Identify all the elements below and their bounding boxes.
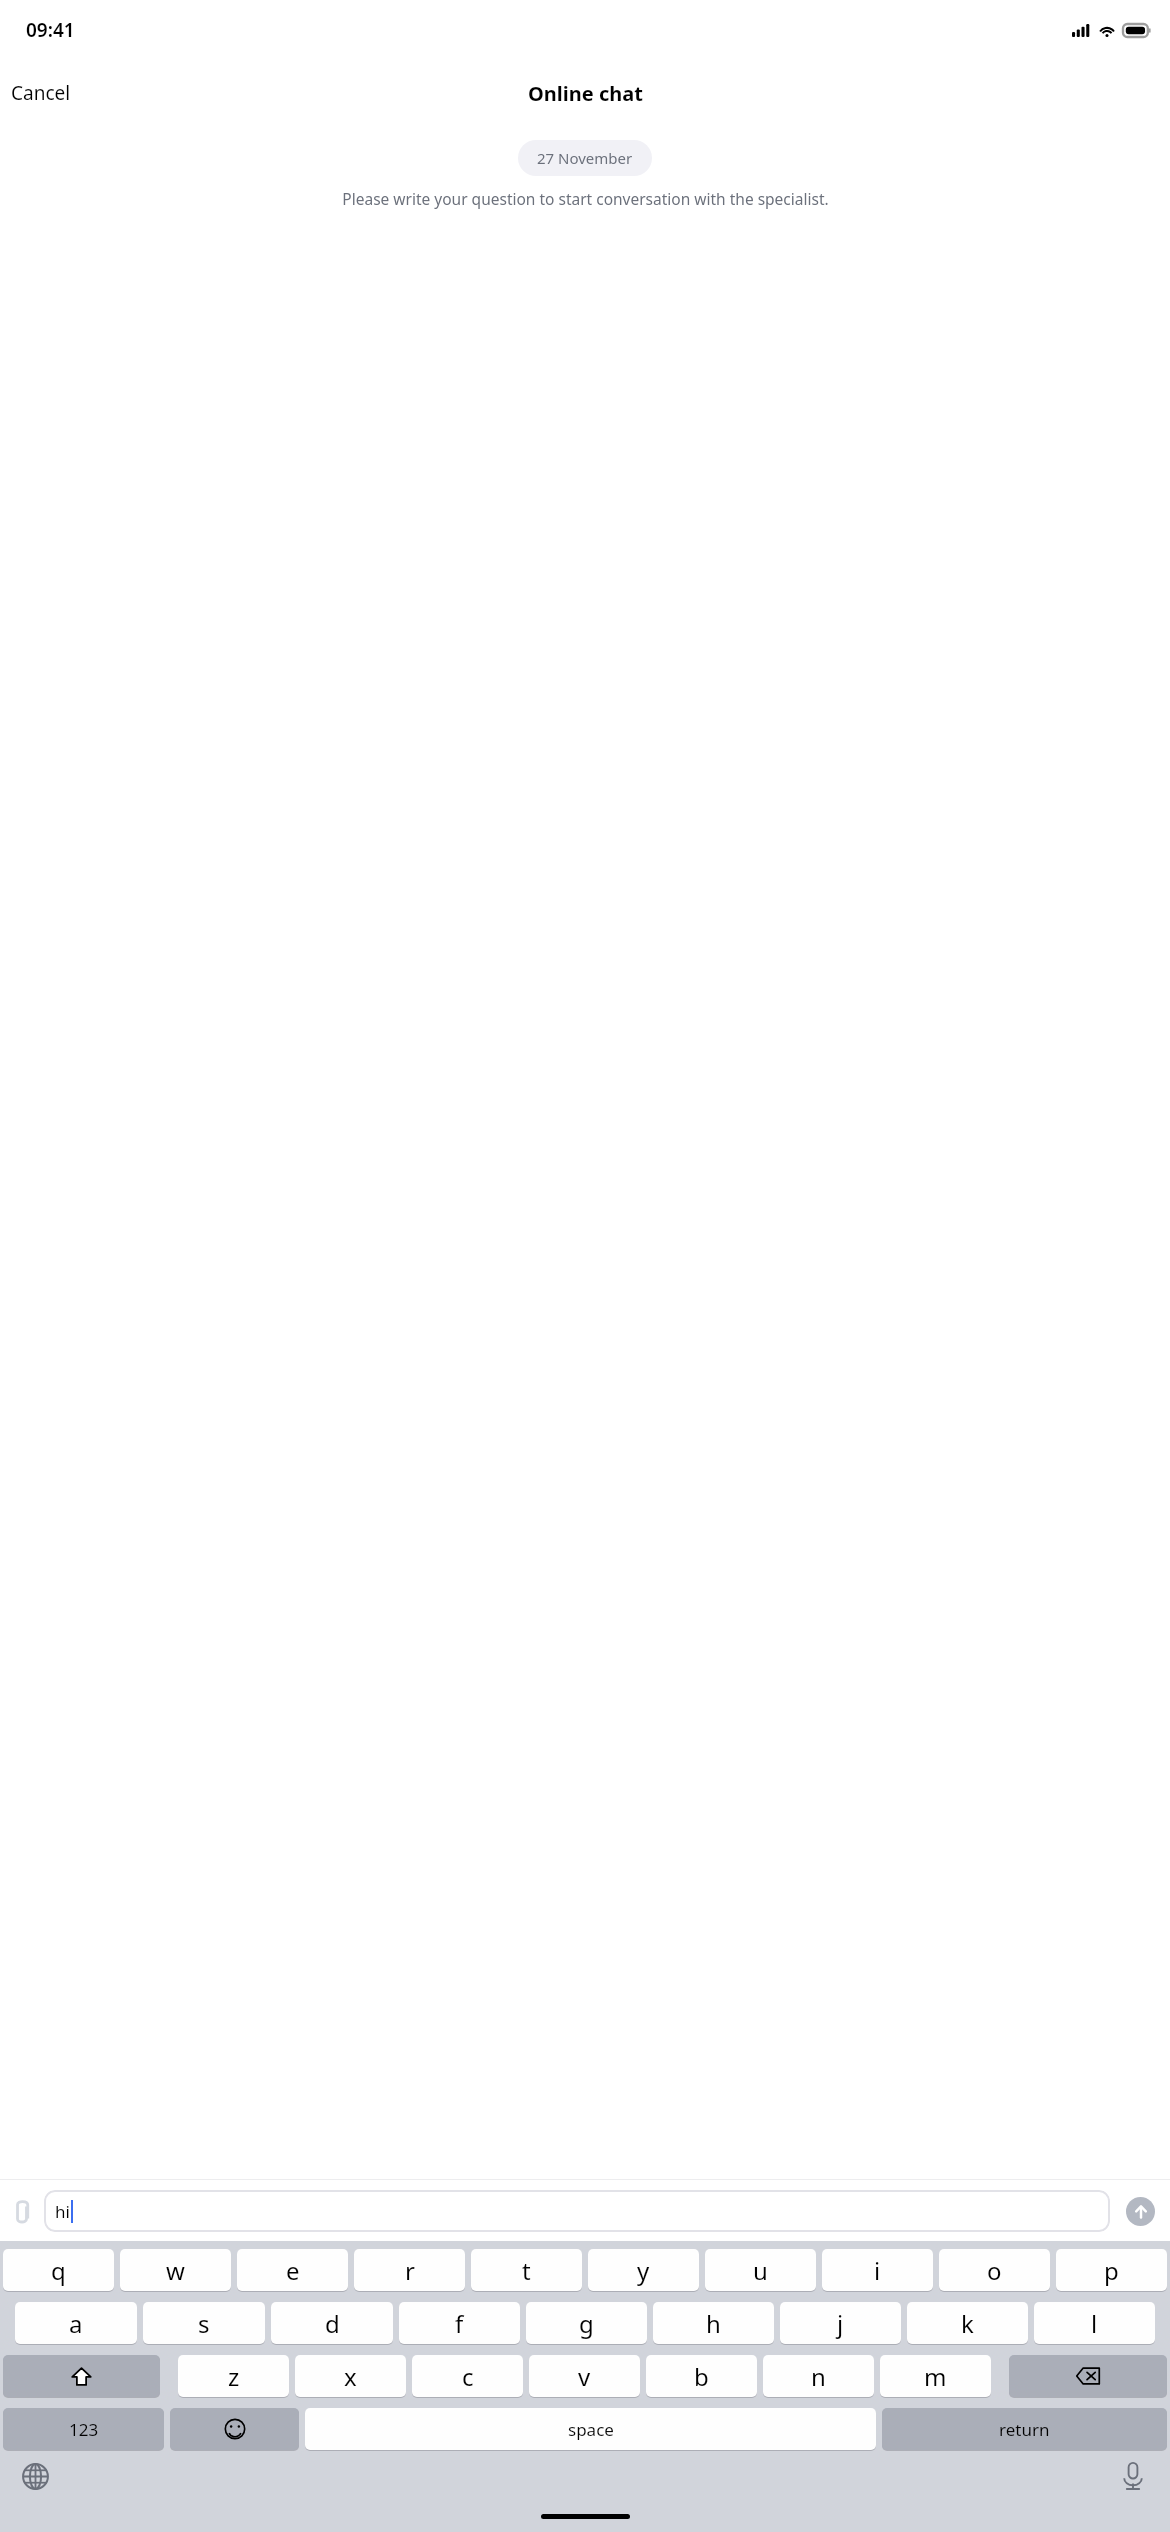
staticText: q (51, 2254, 66, 2287)
button[interactable]: k (907, 2302, 1028, 2344)
staticText: t (522, 2254, 531, 2287)
staticText: 09:41 (26, 17, 75, 43)
staticText: h (706, 2307, 721, 2340)
button[interactable]: y (588, 2249, 699, 2291)
staticText: f (455, 2307, 464, 2340)
button[interactable]: Shift (3, 2355, 160, 2397)
button[interactable]: l (1034, 2302, 1155, 2344)
staticText: b (694, 2360, 709, 2393)
button[interactable]: i (822, 2249, 933, 2291)
button[interactable]: Change keyboard (9, 2450, 61, 2502)
staticText: space (568, 2418, 614, 2441)
button[interactable]: 27 November (518, 140, 652, 176)
button[interactable]: a (15, 2302, 137, 2344)
staticText: j (837, 2307, 844, 2340)
staticText: n (811, 2360, 826, 2393)
staticText: Cancel (11, 80, 71, 106)
staticText: m (924, 2360, 947, 2393)
button[interactable]: v (529, 2355, 640, 2397)
button[interactable]: w (120, 2249, 231, 2291)
button[interactable]: z (178, 2355, 289, 2397)
staticText: r (405, 2254, 415, 2287)
button[interactable]: t (471, 2249, 582, 2291)
staticText: 123 (69, 2418, 99, 2441)
staticText: hi (55, 2200, 70, 2223)
staticText: i (874, 2254, 881, 2287)
button[interactable]: Emoji (170, 2408, 299, 2450)
staticText: z (228, 2360, 240, 2393)
button[interactable]: g (526, 2302, 647, 2344)
button[interactable]: u (705, 2249, 816, 2291)
button[interactable]: return (882, 2408, 1167, 2450)
button[interactable]: space (305, 2408, 876, 2450)
staticText: k (961, 2307, 974, 2340)
button[interactable]: f (399, 2302, 520, 2344)
staticText: 27 November (537, 148, 633, 168)
staticText: l (1091, 2307, 1098, 2340)
staticText: w (166, 2254, 185, 2287)
button[interactable]: x (295, 2355, 406, 2397)
staticText: a (69, 2307, 83, 2340)
button[interactable]: p (1056, 2249, 1167, 2291)
button[interactable]: r (354, 2249, 465, 2291)
button[interactable]: m (880, 2355, 991, 2397)
staticText: g (579, 2307, 594, 2340)
staticText: s (198, 2307, 210, 2340)
staticText: Please write your question to start conv… (342, 188, 829, 209)
button[interactable]: Cancel (0, 72, 82, 114)
button[interactable]: h (653, 2302, 774, 2344)
button[interactable]: c (412, 2355, 523, 2397)
button[interactable]: j (780, 2302, 901, 2344)
button[interactable]: n (763, 2355, 874, 2397)
staticText: o (987, 2254, 1002, 2287)
button[interactable]: e (237, 2249, 348, 2291)
button[interactable]: Dictate (1107, 2450, 1159, 2502)
button[interactable]: q (3, 2249, 114, 2291)
button[interactable]: Attach file (0, 2189, 44, 2233)
staticText: y (637, 2254, 650, 2287)
button[interactable]: b (646, 2355, 757, 2397)
staticText: c (462, 2360, 474, 2393)
button[interactable]: o (939, 2249, 1050, 2291)
staticText: return (999, 2418, 1050, 2441)
button[interactable]: Send (1110, 2181, 1170, 2241)
staticText: v (578, 2360, 591, 2393)
button[interactable]: s (143, 2302, 265, 2344)
staticText: u (753, 2254, 768, 2287)
staticText: d (325, 2307, 340, 2340)
staticText: e (286, 2254, 300, 2287)
staticText: p (1104, 2254, 1119, 2287)
button[interactable]: 123 (3, 2408, 164, 2450)
button[interactable]: hi (44, 2190, 1110, 2232)
staticText: x (344, 2360, 357, 2393)
button[interactable]: Backspace (1009, 2355, 1167, 2397)
button[interactable]: d (271, 2302, 393, 2344)
staticText: Online chat (528, 80, 643, 107)
